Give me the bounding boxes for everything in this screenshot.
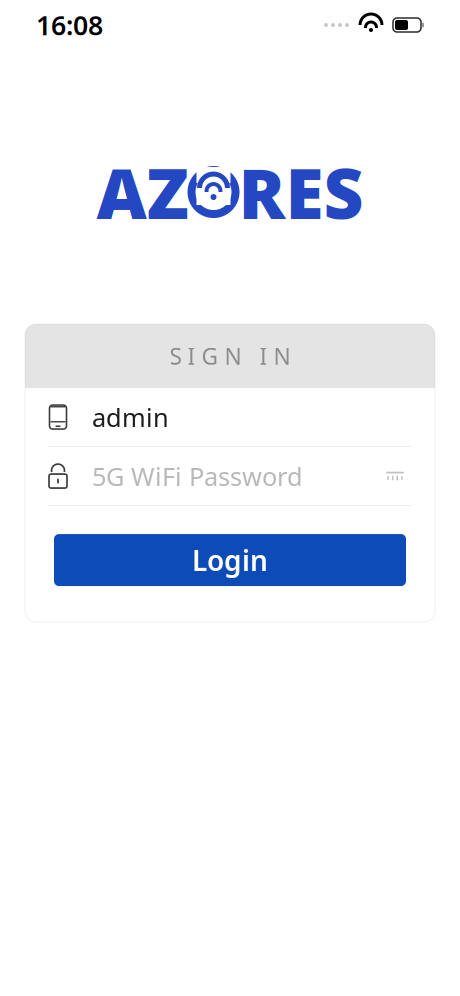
staticText: S I G N I N <box>169 341 290 371</box>
button[interactable]: Login <box>54 534 406 586</box>
staticText: admin <box>92 400 169 434</box>
staticText: RES <box>238 146 363 238</box>
button[interactable]: 5G WiFi Password <box>92 447 378 505</box>
staticText: Login <box>192 541 268 579</box>
staticText: 5G WiFi Password <box>92 459 303 493</box>
button[interactable]: Show password <box>378 456 412 496</box>
button[interactable]: admin <box>25 388 435 446</box>
staticText: 16:08 <box>36 7 103 43</box>
staticText: AZ <box>96 146 188 238</box>
